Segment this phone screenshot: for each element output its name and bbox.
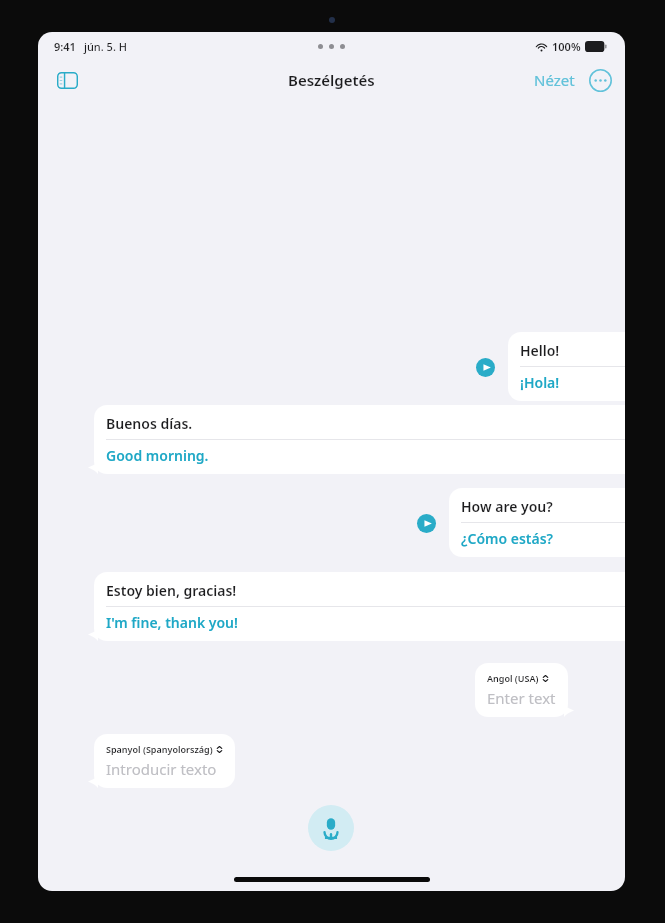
staticText: ¡Hola! — [520, 373, 560, 392]
staticText: 9:41 — [54, 39, 76, 54]
staticText: Buenos días. — [106, 414, 193, 433]
button[interactable]: How are you? — [449, 488, 625, 557]
button[interactable]: Estoy bien, gracias! — [94, 572, 625, 641]
button[interactable]: Hello! — [508, 332, 625, 401]
button[interactable]: Angol (USA) — [475, 663, 568, 717]
staticText: jún. 5. H — [84, 39, 127, 54]
staticText: I'm fine, thank you! — [106, 613, 238, 632]
staticText: ¿Cómo estás? — [461, 529, 554, 548]
staticText: Spanyol (Spanyolország) — [106, 743, 213, 755]
staticText: How are you? — [461, 497, 553, 516]
staticText: Nézet — [534, 70, 575, 90]
staticText: 100% — [552, 39, 581, 54]
staticText: Hello! — [520, 341, 560, 360]
button[interactable]: Nézet — [528, 66, 581, 94]
button[interactable]: Play translation — [416, 513, 436, 533]
button[interactable]: More options — [587, 67, 613, 93]
staticText: Introducir texto — [106, 759, 217, 779]
button[interactable]: Play translation — [475, 357, 495, 377]
staticText: Angol (USA) — [487, 672, 539, 684]
button[interactable]: Show sidebar — [50, 63, 84, 97]
staticText: Enter text — [487, 688, 556, 708]
staticText: Estoy bien, gracias! — [106, 581, 237, 600]
button[interactable]: Buenos días. — [94, 405, 625, 474]
staticText: Good morning. — [106, 446, 209, 465]
staticText: Beszélgetés — [288, 70, 375, 90]
button[interactable]: Record speech — [308, 805, 354, 851]
button[interactable]: Spanyol (Spanyolország) — [94, 734, 235, 788]
